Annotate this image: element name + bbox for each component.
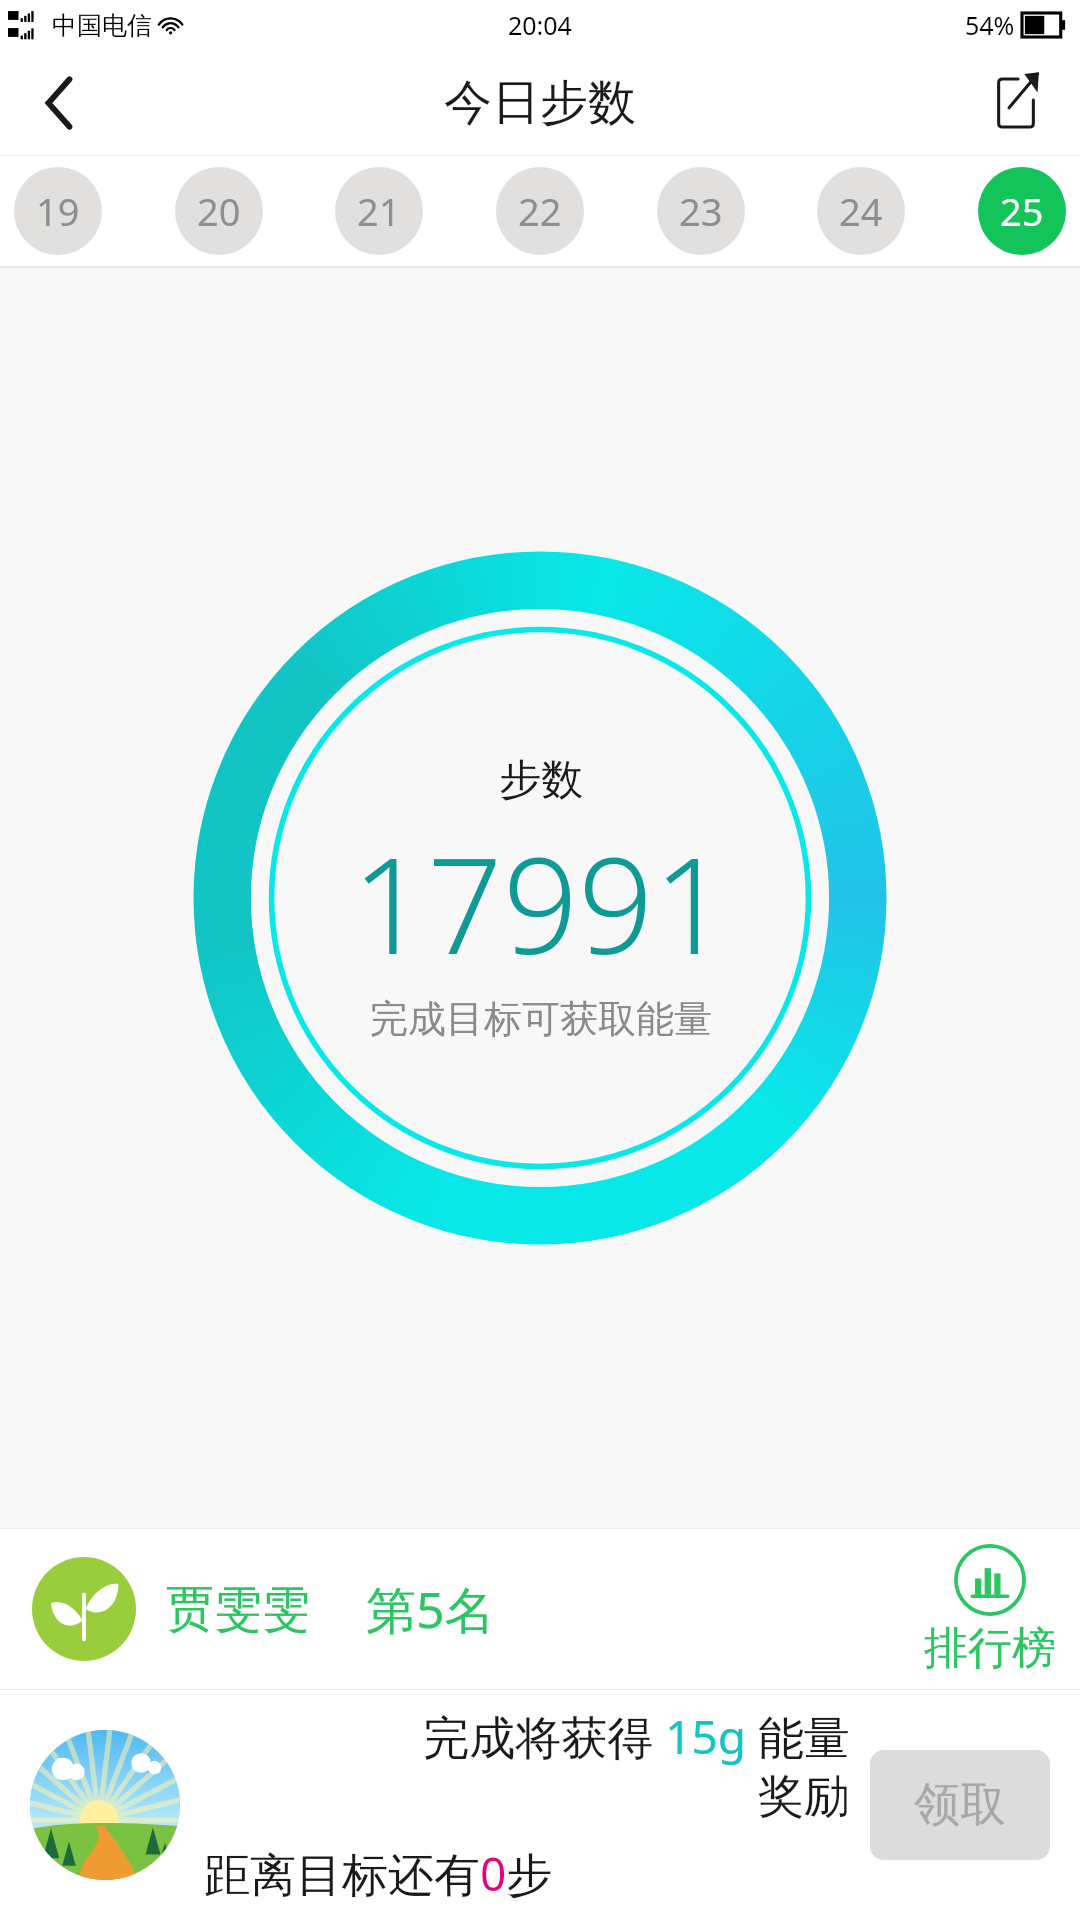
button[interactable]: 21 <box>335 167 423 255</box>
staticText: 距离目标还有0步 <box>204 1842 553 1905</box>
staticText: 奖励 <box>758 1768 850 1826</box>
button[interactable]: 24 <box>817 167 905 255</box>
button[interactable]: 19 <box>14 167 102 255</box>
button[interactable]: Share <box>972 59 1060 147</box>
staticText: 17991 <box>352 813 729 993</box>
staticText: 21 <box>357 185 401 237</box>
button[interactable]: 22 <box>496 167 584 255</box>
staticText: 20 <box>197 185 241 237</box>
staticText: 中国电信 <box>52 10 152 41</box>
staticText: 23 <box>679 185 723 237</box>
staticText: 步数 <box>499 754 583 807</box>
staticText: 19 <box>36 185 80 237</box>
button[interactable]: 25 <box>978 167 1066 255</box>
button[interactable]: 20 <box>175 167 263 255</box>
staticText: 24 <box>839 185 883 237</box>
staticText: 排行榜 <box>924 1621 1056 1676</box>
staticText: 完成目标可获取能量 <box>370 995 712 1043</box>
staticText: 22 <box>518 185 562 237</box>
staticText: 第5名 <box>366 1575 495 1643</box>
staticText: 54% <box>965 8 1015 42</box>
button[interactable]: Back <box>18 61 102 145</box>
staticText: 25 <box>1000 185 1044 237</box>
staticText: 领取 <box>914 1776 1006 1834</box>
button[interactable]: 排行榜 <box>924 1543 1056 1676</box>
button[interactable]: 23 <box>657 167 745 255</box>
staticText: 20:04 <box>508 8 572 42</box>
staticText: 贾雯雯 <box>166 1579 310 1639</box>
button[interactable]: 领取 <box>870 1750 1050 1860</box>
staticText: 今日步数 <box>444 73 636 133</box>
staticText: 完成将获得 15g 能量 <box>423 1705 850 1768</box>
